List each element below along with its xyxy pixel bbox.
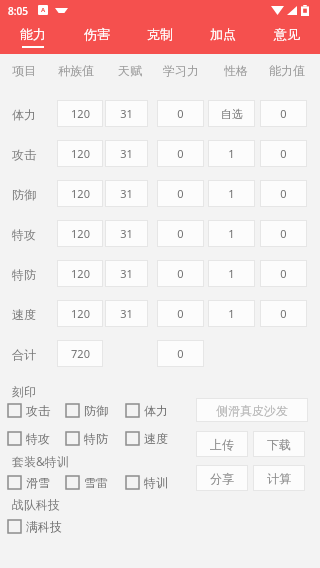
staticText: 刻印 bbox=[12, 384, 36, 399]
staticText: 特攻 bbox=[12, 227, 36, 242]
button[interactable]: 0 bbox=[157, 340, 204, 367]
staticText: 能力值 bbox=[269, 63, 305, 78]
staticText: 120 bbox=[71, 106, 90, 121]
staticText: 120 bbox=[71, 306, 90, 321]
staticText: 120 bbox=[71, 186, 90, 201]
button[interactable]: 雪雷 bbox=[66, 475, 108, 490]
staticText: A bbox=[41, 6, 46, 14]
staticText: 31 bbox=[120, 266, 133, 281]
staticText: 体力 bbox=[12, 107, 36, 122]
button[interactable]: 1 bbox=[208, 220, 255, 247]
button[interactable]: 0 bbox=[260, 180, 307, 207]
button[interactable]: 分享 bbox=[196, 465, 248, 491]
button[interactable]: 计算 bbox=[253, 465, 305, 491]
button[interactable]: 31 bbox=[105, 140, 148, 167]
button[interactable]: 1 bbox=[208, 140, 255, 167]
button[interactable]: 0 bbox=[157, 300, 204, 327]
button[interactable]: 120 bbox=[57, 180, 103, 207]
button[interactable]: 31 bbox=[105, 260, 148, 287]
button[interactable]: 加点 bbox=[193, 20, 253, 54]
staticText: 0 bbox=[177, 146, 184, 161]
staticText: 攻击 bbox=[26, 403, 50, 418]
other: Signal bbox=[287, 6, 297, 15]
staticText: 特训 bbox=[144, 475, 168, 490]
button[interactable]: 31 bbox=[105, 100, 148, 127]
staticText: 合计 bbox=[12, 347, 36, 362]
staticText: 0 bbox=[280, 146, 287, 161]
staticText: 套装&特训 bbox=[12, 453, 69, 469]
button[interactable]: 120 bbox=[57, 300, 103, 327]
staticText: 特防 bbox=[12, 267, 36, 282]
button[interactable]: 满科技 bbox=[8, 519, 62, 534]
button[interactable]: 1 bbox=[208, 260, 255, 287]
staticText: 1 bbox=[228, 266, 235, 281]
staticText: 120 bbox=[71, 146, 90, 161]
button[interactable]: 伤害 bbox=[67, 20, 127, 54]
button[interactable]: 防御 bbox=[66, 403, 108, 418]
staticText: 防御 bbox=[12, 187, 36, 202]
staticText: 1 bbox=[228, 146, 235, 161]
button[interactable]: 120 bbox=[57, 100, 103, 127]
staticText: 防御 bbox=[84, 403, 108, 418]
button[interactable]: 下载 bbox=[253, 431, 305, 457]
button[interactable]: 0 bbox=[157, 220, 204, 247]
staticText: 0 bbox=[280, 186, 287, 201]
staticText: 0 bbox=[177, 186, 184, 201]
button[interactable]: 克制 bbox=[130, 20, 190, 54]
staticText: 0 bbox=[177, 226, 184, 241]
staticText: 31 bbox=[120, 186, 133, 201]
button[interactable]: 自选 bbox=[208, 100, 255, 127]
staticText: 0 bbox=[177, 346, 184, 361]
staticText: 下载 bbox=[267, 437, 291, 452]
staticText: 0 bbox=[177, 266, 184, 281]
staticText: 战队科技 bbox=[12, 497, 60, 512]
button[interactable]: 速度 bbox=[126, 431, 168, 446]
button[interactable]: 31 bbox=[105, 180, 148, 207]
button[interactable]: 120 bbox=[57, 140, 103, 167]
button[interactable]: 0 bbox=[260, 300, 307, 327]
staticText: 滑雪 bbox=[26, 475, 50, 490]
staticText: 学习力 bbox=[163, 63, 199, 78]
staticText: 种族值 bbox=[58, 63, 94, 78]
button[interactable]: 侧滑真皮沙发 bbox=[196, 398, 308, 422]
button[interactable]: 720 bbox=[57, 340, 103, 367]
staticText: 120 bbox=[71, 226, 90, 241]
button[interactable]: 上传 bbox=[196, 431, 248, 457]
button[interactable]: 特训 bbox=[126, 475, 168, 490]
button[interactable]: 能力 bbox=[3, 20, 63, 54]
button[interactable]: 攻击 bbox=[8, 403, 50, 418]
staticText: 1 bbox=[228, 306, 235, 321]
staticText: 0 bbox=[280, 306, 287, 321]
button[interactable]: 0 bbox=[260, 260, 307, 287]
button[interactable]: 意见 bbox=[257, 20, 317, 54]
staticText: 特防 bbox=[84, 431, 108, 446]
button[interactable]: 120 bbox=[57, 220, 103, 247]
button[interactable]: 特攻 bbox=[8, 431, 50, 446]
staticText: 速度 bbox=[144, 431, 168, 446]
button[interactable]: 31 bbox=[105, 300, 148, 327]
button[interactable]: 0 bbox=[260, 100, 307, 127]
staticText: 意见 bbox=[274, 26, 300, 42]
button[interactable]: 31 bbox=[105, 220, 148, 247]
staticText: 120 bbox=[71, 266, 90, 281]
staticText: 伤害 bbox=[84, 26, 110, 42]
button[interactable]: 1 bbox=[208, 180, 255, 207]
staticText: 计算 bbox=[267, 471, 291, 486]
button[interactable]: 0 bbox=[260, 140, 307, 167]
button[interactable]: 0 bbox=[157, 260, 204, 287]
button[interactable]: 0 bbox=[157, 140, 204, 167]
staticText: 侧滑真皮沙发 bbox=[216, 403, 288, 418]
button[interactable]: 体力 bbox=[126, 403, 168, 418]
button[interactable]: 特防 bbox=[66, 431, 108, 446]
button[interactable]: 1 bbox=[208, 300, 255, 327]
button[interactable]: 0 bbox=[157, 180, 204, 207]
button[interactable]: 滑雪 bbox=[8, 475, 50, 490]
staticText: 0 bbox=[177, 306, 184, 321]
staticText: 0 bbox=[280, 106, 287, 121]
staticText: 雪雷 bbox=[84, 475, 108, 490]
button[interactable]: 0 bbox=[260, 220, 307, 247]
button[interactable]: 0 bbox=[157, 100, 204, 127]
staticText: 720 bbox=[71, 346, 90, 361]
button[interactable]: 120 bbox=[57, 260, 103, 287]
staticText: 31 bbox=[120, 226, 133, 241]
